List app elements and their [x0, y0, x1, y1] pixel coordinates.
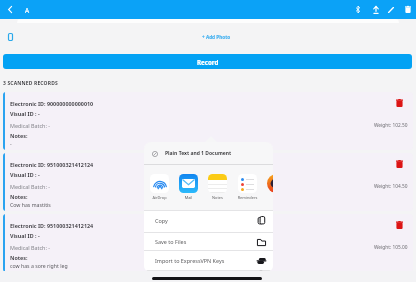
- staticText: Medical Batch: -: [10, 122, 51, 129]
- button[interactable]: Notes: [206, 174, 229, 200]
- staticText: Record: [197, 58, 219, 66]
- button[interactable]: Electronic ID: 951000321412124: [3, 153, 413, 211]
- button[interactable]: Import to ExpressVPN Keys: [144, 250, 273, 270]
- button[interactable]: Mail: [177, 174, 200, 200]
- button[interactable]: Copy: [144, 210, 273, 231]
- button[interactable]: Reminders: [236, 174, 259, 200]
- staticText: Weight: 104.50: [374, 183, 408, 190]
- staticText: cow has a sore right leg: [10, 262, 68, 269]
- staticText: Reminders: [236, 195, 259, 200]
- staticText: Electronic ID: 951000321412124: [10, 161, 94, 168]
- staticText: Medical Batch: -: [10, 183, 51, 190]
- button[interactable]: Record: [3, 54, 412, 69]
- button[interactable]: + Add Photo: [202, 34, 231, 40]
- staticText: Visual ID : -: [10, 110, 40, 117]
- staticText: Mail: [177, 195, 200, 200]
- staticText: Plain Text and 1 Document: [165, 150, 232, 157]
- button[interactable]: Electronic ID: 951000321412124: [3, 214, 413, 272]
- button[interactable]: AirDrop: [148, 174, 171, 200]
- staticText: Visual ID : -: [10, 171, 40, 178]
- button[interactable]: Delete record: [393, 97, 405, 109]
- button[interactable]: Edit: [384, 3, 397, 16]
- button[interactable]: Delete record: [393, 219, 405, 231]
- staticText: Copy: [155, 217, 168, 224]
- staticText: Notes:: [10, 254, 28, 261]
- button[interactable]: Save to Files: [144, 232, 273, 251]
- button[interactable]: Delete: [401, 3, 414, 16]
- staticText: + Add Photo: [202, 34, 231, 40]
- button[interactable]: Fr: [265, 174, 273, 200]
- staticText: Notes:: [10, 132, 28, 139]
- staticText: Import to ExpressVPN Keys: [155, 257, 225, 264]
- staticText: Weight: 102.50: [374, 122, 408, 129]
- staticText: Medical Batch: -: [10, 244, 51, 251]
- staticText: Electronic ID: 951000321412124: [10, 222, 94, 229]
- button[interactable]: Bluetooth: [351, 3, 364, 16]
- button[interactable]: Device: [4, 30, 17, 43]
- staticText: Weight: 105.00: [374, 244, 408, 251]
- button[interactable]: Delete record: [393, 158, 405, 170]
- button[interactable]: Back: [4, 3, 16, 15]
- staticText: Notes:: [10, 193, 28, 200]
- button[interactable]: Share: [369, 3, 382, 16]
- staticText: Visual ID : -: [10, 232, 40, 239]
- staticText: Cow has mastitis: [10, 201, 51, 208]
- staticText: -: [10, 140, 12, 147]
- staticText: Electronic ID: 900000000000010: [10, 100, 94, 107]
- staticText: Save to Files: [155, 238, 187, 245]
- staticText: Notes: [206, 195, 229, 200]
- staticText: 3 SCANNED RECORDS: [3, 80, 58, 87]
- staticText: A: [25, 6, 30, 15]
- button[interactable]: Electronic ID: 900000000000010: [3, 92, 413, 150]
- staticText: AirDrop: [148, 195, 171, 200]
